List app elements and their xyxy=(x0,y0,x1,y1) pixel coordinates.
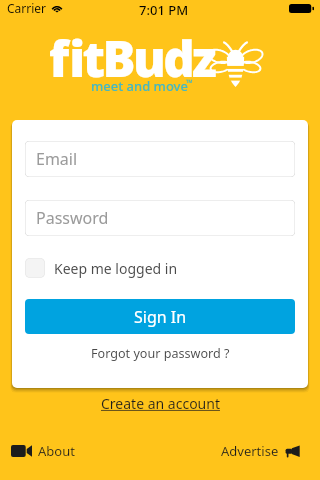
staticText: Sign In xyxy=(134,306,187,328)
button[interactable]: Password xyxy=(25,200,295,236)
button[interactable]: Create an account xyxy=(97,392,224,415)
button[interactable]: Email xyxy=(25,141,295,177)
staticText: Email xyxy=(36,148,78,170)
button[interactable]: Sign In xyxy=(25,299,295,334)
staticText: 7:01 PM xyxy=(139,1,189,19)
staticText: Keep me logged in xyxy=(54,259,178,278)
staticText: fitBudz xyxy=(49,25,215,92)
staticText: Password xyxy=(36,207,109,229)
staticText: About xyxy=(38,442,75,460)
staticText: meet and move xyxy=(91,77,188,95)
staticText: ™ xyxy=(186,76,193,88)
staticText: Carrier xyxy=(7,0,47,16)
button[interactable]: About xyxy=(7,436,79,466)
button[interactable]: Forgot your password ? xyxy=(85,342,236,365)
button[interactable]: Keep me logged in xyxy=(25,258,178,278)
staticText: Advertise xyxy=(221,442,279,460)
button[interactable]: Advertise xyxy=(217,436,304,466)
